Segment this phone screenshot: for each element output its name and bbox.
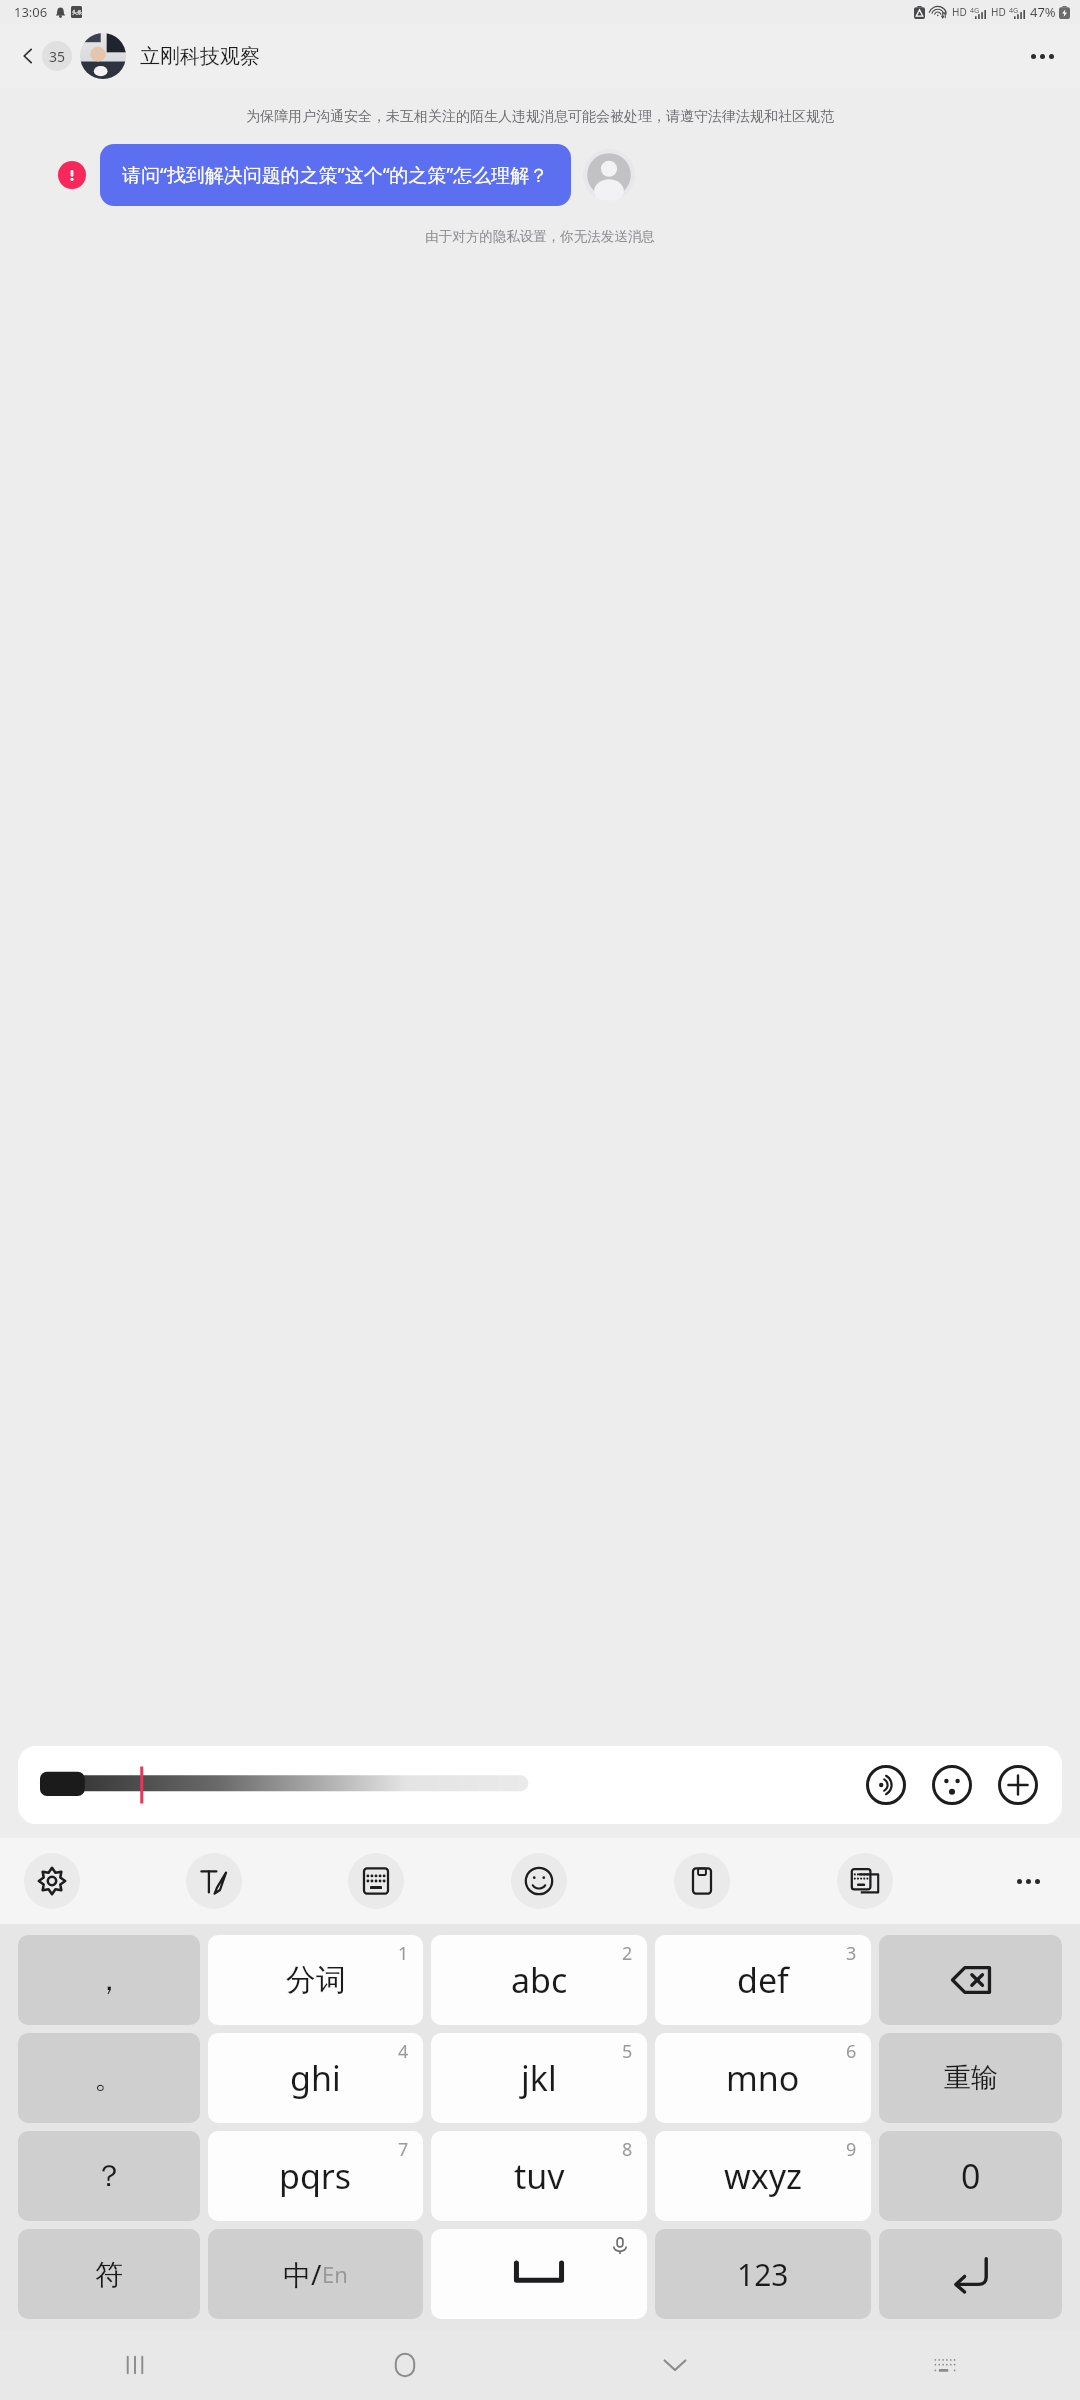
button[interactable]: Keyboard layout xyxy=(348,1853,404,1909)
staticText: 7 xyxy=(398,2137,409,2162)
button[interactable]: Send failed xyxy=(58,161,86,189)
button[interactable]: Recents xyxy=(0,2330,270,2400)
button[interactable]: Add xyxy=(996,1763,1040,1807)
button[interactable]: Your avatar xyxy=(583,149,635,201)
staticText: 5 xyxy=(622,2039,633,2064)
staticText: 0 xyxy=(961,2153,981,2199)
button[interactable]: 8 xyxy=(431,2131,647,2221)
staticText: 9 xyxy=(846,2137,857,2162)
staticText: 中/ xyxy=(283,2255,322,2293)
staticText: 6 xyxy=(846,2039,857,2064)
staticText: ghi xyxy=(290,2055,341,2101)
button[interactable]: 重输 xyxy=(879,2033,1062,2123)
button[interactable]: Clipboard xyxy=(674,1853,730,1909)
staticText: ， xyxy=(94,1961,124,1999)
staticText: HD xyxy=(952,5,967,19)
staticText: ？ xyxy=(94,2157,124,2195)
button[interactable]: Symbols xyxy=(18,2229,200,2319)
button[interactable]: Period xyxy=(18,2033,200,2123)
staticText: 47% xyxy=(1030,3,1056,21)
staticText: abc xyxy=(511,1957,568,2003)
staticText: 。 xyxy=(94,2059,124,2097)
button[interactable]: 9 xyxy=(655,2131,871,2221)
staticText: 2 xyxy=(622,1941,633,1966)
button[interactable]: 3 xyxy=(655,1935,871,2025)
button[interactable]: Voice xyxy=(864,1763,908,1807)
button[interactable]: Emoji xyxy=(511,1853,567,1909)
staticText: 由于对方的隐私设置，你无法发送消息 xyxy=(0,228,1080,245)
staticText: HD xyxy=(991,5,1006,19)
staticText: wxyz xyxy=(724,2153,803,2199)
button[interactable]: Question mark xyxy=(18,2131,200,2221)
staticText: def xyxy=(737,1957,789,2003)
button[interactable]: 2 xyxy=(431,1935,647,2025)
button[interactable]: More xyxy=(1000,1853,1056,1909)
staticText: 8 xyxy=(622,2137,633,2162)
button[interactable]: 0 xyxy=(879,2131,1062,2221)
button[interactable]: 立刚科技观察 xyxy=(140,44,260,69)
staticText: 为保障用户沟通安全，未互相关注的陌生人违规消息可能会被处理，请遵守法律法规和社区… xyxy=(56,108,1024,126)
staticText: jkl xyxy=(521,2055,557,2101)
staticText: tuv xyxy=(514,2153,565,2199)
staticText: 头条 xyxy=(72,9,82,15)
staticText: 35 xyxy=(49,47,66,66)
button[interactable]: Split keyboard xyxy=(837,1853,893,1909)
button[interactable]: Switch keyboard xyxy=(810,2330,1080,2400)
button[interactable]: 5 xyxy=(431,2033,647,2123)
staticText: 1 xyxy=(398,1941,409,1966)
button[interactable]: 4 xyxy=(208,2033,423,2123)
button[interactable]: 7 xyxy=(208,2131,423,2221)
staticText: 4 xyxy=(398,2039,409,2064)
staticText: 13:06 xyxy=(14,3,48,21)
button[interactable]: 请问“找到解决问题的之策”这个“的之策”怎么理解？ xyxy=(100,144,571,206)
button[interactable]: Hide keyboard xyxy=(540,2330,810,2400)
staticText: 符 xyxy=(95,2257,123,2292)
button[interactable]: Settings xyxy=(24,1853,80,1909)
button[interactable]: 1 xyxy=(208,1935,423,2025)
button[interactable]: Emoji xyxy=(930,1763,974,1807)
staticText: pqrs xyxy=(279,2153,352,2199)
button[interactable]: Back xyxy=(14,35,78,77)
staticText: En xyxy=(322,2259,348,2289)
staticText: 4G xyxy=(1009,6,1019,16)
staticText: 4G xyxy=(970,6,980,16)
button[interactable]: Home xyxy=(270,2330,540,2400)
button[interactable]: Handwriting xyxy=(186,1853,242,1909)
button[interactable]: Backspace xyxy=(879,1935,1062,2025)
button[interactable]: Comma xyxy=(18,1935,200,2025)
button[interactable]: Enter xyxy=(879,2229,1062,2319)
staticText: 重输 xyxy=(944,2061,998,2095)
button[interactable]: 6 xyxy=(655,2033,871,2123)
staticText: 请问“找到解决问题的之策”这个“的之策”怎么理解？ xyxy=(122,162,549,188)
button[interactable]: Numbers xyxy=(655,2229,871,2319)
button[interactable]: Space xyxy=(431,2229,647,2319)
staticText: 分词 xyxy=(286,1961,346,1999)
staticText: 3 xyxy=(846,1941,857,1966)
button[interactable]: More options xyxy=(1022,36,1062,76)
other: Back xyxy=(20,48,36,64)
staticText: mno xyxy=(726,2055,800,2101)
button[interactable]: Voice xyxy=(18,1746,1062,1824)
button[interactable]: Language xyxy=(208,2229,423,2319)
staticText: 123 xyxy=(737,2254,789,2295)
